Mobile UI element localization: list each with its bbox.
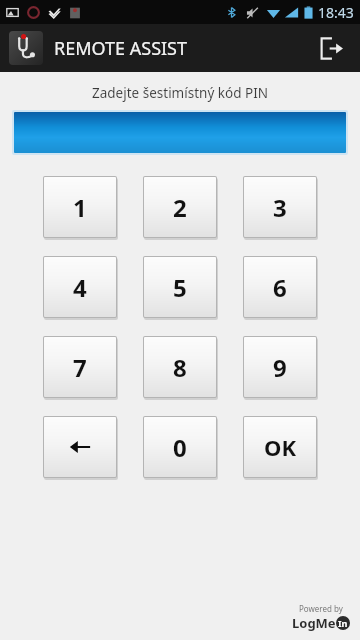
button[interactable]: 1 (43, 176, 117, 238)
staticText: 2 (173, 191, 187, 224)
staticText: In (338, 617, 348, 629)
button[interactable]: 5 (143, 256, 217, 318)
button[interactable]: 3 (243, 176, 317, 238)
staticText: LogMe (292, 614, 336, 632)
button[interactable]: Sign out (312, 29, 350, 67)
staticText: OK (264, 432, 297, 462)
button[interactable] (14, 112, 346, 153)
staticText: 0 (173, 431, 187, 464)
button[interactable]: 0 (143, 416, 217, 478)
button[interactable]: 9 (243, 336, 317, 398)
staticText: 1 (73, 191, 87, 224)
button[interactable]: OK (243, 416, 317, 478)
button[interactable]: Backspace (43, 416, 117, 478)
button[interactable]: 2 (143, 176, 217, 238)
button[interactable]: 7 (43, 336, 117, 398)
staticText: REMOTE ASSIST (54, 36, 188, 61)
button[interactable]: 8 (143, 336, 217, 398)
staticText: 4 (73, 271, 87, 304)
staticText: Zadejte šestimístný kód PIN (0, 84, 360, 102)
staticText: 8 (173, 351, 187, 384)
button[interactable]: 6 (243, 256, 317, 318)
button[interactable]: 4 (43, 256, 117, 318)
staticText: Powered by (299, 603, 343, 614)
staticText: 9 (273, 351, 287, 384)
staticText: 3 (273, 191, 287, 224)
staticText: 5 (173, 271, 187, 304)
staticText: 6 (273, 271, 287, 304)
staticText: 18:43 (318, 3, 354, 22)
staticText: 7 (73, 351, 87, 384)
